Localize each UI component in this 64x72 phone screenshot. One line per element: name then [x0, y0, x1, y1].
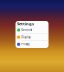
button[interactable]: Display: [15, 34, 48, 41]
staticText: General: [21, 28, 32, 32]
button[interactable]: General: [15, 27, 48, 33]
staticText: Settings: [17, 21, 34, 26]
button[interactable]: Privacy: [15, 41, 48, 48]
staticText: Privacy: [21, 42, 29, 46]
staticText: Display: [21, 35, 30, 39]
